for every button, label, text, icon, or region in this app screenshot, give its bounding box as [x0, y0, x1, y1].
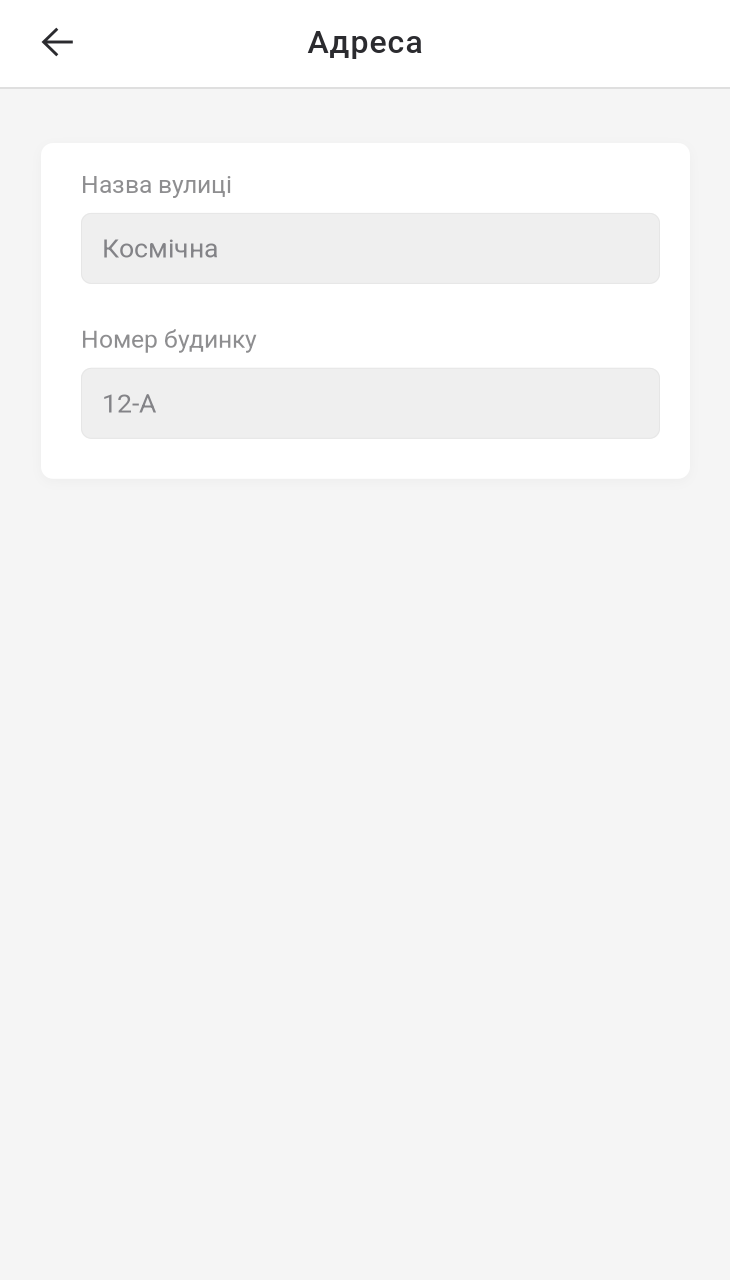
staticText: 12-A [102, 388, 156, 419]
staticText: Номер будинку [81, 325, 257, 354]
staticText: Назва вулиці [81, 170, 232, 199]
staticText: Космічна [102, 233, 219, 264]
button[interactable]: Back [27, 11, 89, 73]
staticText: Адреса [307, 23, 422, 61]
button[interactable]: Космічна [81, 213, 660, 284]
button[interactable]: 12-A [81, 368, 660, 439]
